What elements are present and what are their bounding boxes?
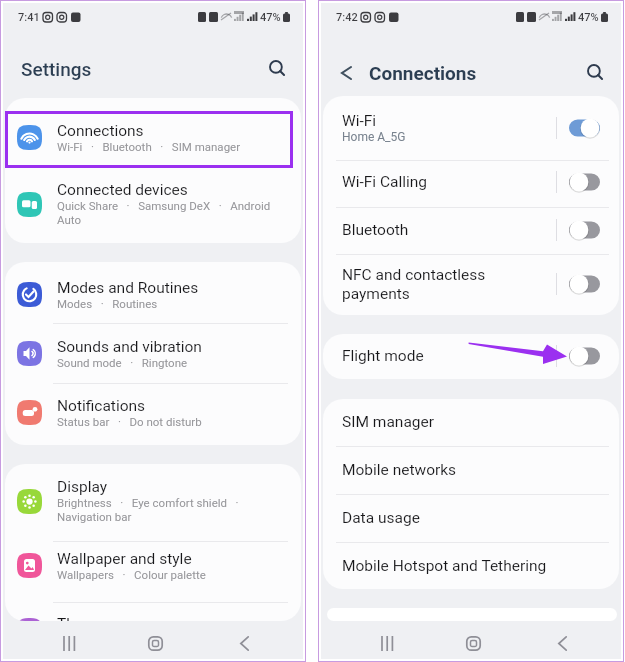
- button[interactable]: SIM manager: [323, 400, 619, 444]
- button[interactable]: Display: [5, 475, 301, 527]
- button[interactable]: Wallpaper and style: [5, 539, 301, 591]
- staticText: Status bar · Do not disturb: [57, 415, 202, 428]
- staticText: Flight mode: [342, 347, 424, 365]
- button[interactable]: Toggle Wi-Fi Calling: [569, 172, 600, 192]
- button[interactable]: NFC and contactless payments: [323, 260, 619, 308]
- staticText: Connections: [57, 122, 144, 140]
- staticText: Wallpaper and style: [57, 550, 192, 568]
- staticText: 7:42: [336, 11, 358, 24]
- button[interactable]: Themes: [5, 604, 301, 621]
- staticText: Modes and Routines: [57, 279, 199, 297]
- button[interactable]: Modes and Routines: [5, 268, 301, 320]
- staticText: Themes: [57, 615, 113, 621]
- staticText: Brightness · Eye comfort shield · Naviga…: [57, 496, 239, 524]
- staticText: SIM manager: [342, 413, 434, 431]
- staticText: Wi-Fi Calling: [342, 173, 428, 191]
- button[interactable]: Toggle NFC and contactless payments: [569, 274, 600, 294]
- button[interactable]: Home: [457, 632, 489, 654]
- staticText: Bluetooth: [342, 221, 409, 239]
- staticText: Connected devices: [57, 181, 188, 199]
- staticText: Home A_5G: [342, 130, 406, 144]
- button[interactable]: Back: [228, 632, 260, 654]
- button[interactable]: Mobile Hotspot and Tethering: [323, 544, 619, 588]
- button[interactable]: Search: [265, 56, 291, 82]
- button[interactable]: Home: [139, 632, 171, 654]
- button[interactable]: Data usage: [323, 496, 619, 540]
- button[interactable]: Connected devices: [5, 178, 301, 230]
- button[interactable]: Notifications: [5, 386, 301, 438]
- staticText: Wallpapers · Colour palette: [57, 568, 206, 581]
- button[interactable]: Bluetooth: [323, 206, 619, 254]
- button[interactable]: Recents: [371, 632, 403, 654]
- button[interactable]: Wi-Fi: [323, 104, 619, 152]
- staticText: Sounds and vibration: [57, 338, 202, 356]
- staticText: Connections: [369, 62, 477, 84]
- staticText: Mobile networks: [342, 461, 457, 479]
- button[interactable]: Search: [583, 60, 609, 86]
- button[interactable]: Connections: [5, 111, 301, 163]
- button[interactable]: Sounds and vibration: [5, 327, 301, 379]
- staticText: NFC and contactless payments: [342, 266, 486, 303]
- button[interactable]: Toggle Wi-Fi: [569, 118, 600, 138]
- button[interactable]: Back: [546, 632, 578, 654]
- staticText: Modes · Routines: [57, 297, 158, 310]
- staticText: 47%: [578, 11, 599, 24]
- button[interactable]: Recents: [53, 632, 85, 654]
- staticText: Display: [57, 478, 108, 496]
- staticText: Data usage: [342, 509, 420, 527]
- staticText: Quick Share · Samsung DeX · Android Auto: [57, 199, 271, 227]
- staticText: Sound mode · Ringtone: [57, 356, 188, 369]
- button[interactable]: Flight mode: [323, 334, 619, 378]
- button[interactable]: Back: [334, 61, 358, 85]
- button[interactable]: Toggle Bluetooth: [569, 220, 600, 240]
- staticText: 7:41: [18, 11, 40, 24]
- staticText: Mobile Hotspot and Tethering: [342, 557, 547, 575]
- staticText: 47%: [260, 11, 281, 24]
- staticText: Settings: [21, 58, 92, 80]
- button[interactable]: Wi-Fi Calling: [323, 158, 619, 206]
- button[interactable]: Toggle Flight mode: [569, 346, 600, 366]
- staticText: Wi-Fi · Bluetooth · SIM manager: [57, 140, 241, 153]
- button[interactable]: Mobile networks: [323, 448, 619, 492]
- staticText: Notifications: [57, 397, 146, 415]
- staticText: Wi-Fi: [342, 112, 377, 130]
